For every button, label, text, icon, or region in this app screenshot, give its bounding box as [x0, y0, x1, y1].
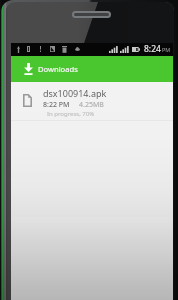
staticText: 4.25MB [79, 100, 104, 110]
other: Downloads [24, 63, 33, 75]
button[interactable]: Downloads [11, 56, 173, 82]
staticText: PM [162, 46, 171, 53]
button[interactable]: dsx100914.apk [11, 82, 173, 120]
staticText: Downloads [38, 64, 78, 74]
staticText: 8:22 PM [43, 100, 70, 110]
staticText: In progress, 70% [47, 110, 95, 118]
staticText: dsx100914.apk [43, 87, 107, 99]
staticText: 8:24 [144, 43, 161, 55]
